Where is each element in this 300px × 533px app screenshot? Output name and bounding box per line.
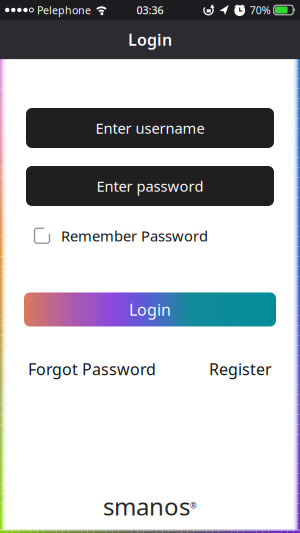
staticText: Remember Password [61,226,208,245]
staticText: Register [209,358,272,380]
staticText: 70% [250,3,271,17]
button[interactable]: Register [209,358,272,380]
button[interactable]: Forgot Password [28,358,156,380]
button[interactable]: Login [24,292,276,326]
staticText: 03:36 [136,3,163,17]
staticText: Pelephone [37,3,91,17]
staticText: Login [128,29,172,50]
staticText: smanos® [103,490,197,522]
button[interactable]: Remember Password [34,226,208,245]
staticText: Login [129,299,171,320]
button[interactable]: Enter username [26,108,274,148]
button[interactable]: Enter password [26,166,274,206]
staticText: Enter password [96,176,203,196]
staticText: Forgot Password [28,358,156,380]
staticText: Enter username [95,118,204,138]
